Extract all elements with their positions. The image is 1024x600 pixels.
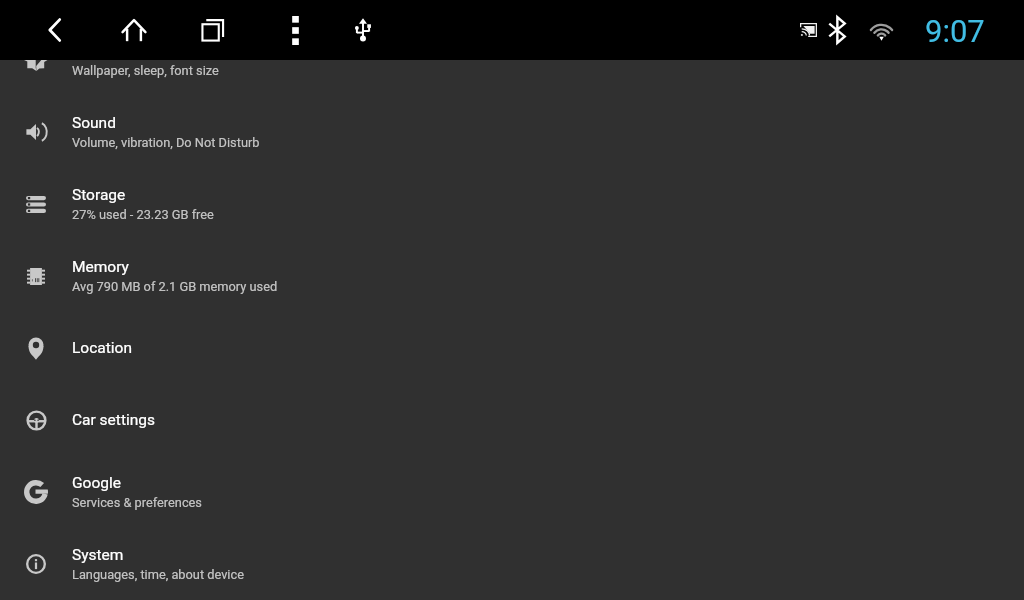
staticText: Memory [72,258,129,276]
staticText: 27% used - 23.23 GB free [72,207,214,222]
staticText: System [72,546,124,564]
button[interactable]: Sound [0,96,1024,168]
button[interactable]: Location [0,312,1024,384]
button[interactable]: Memory [0,240,1024,312]
staticText: Volume, vibration, Do Not Disturb [72,135,260,150]
button[interactable]: Home [110,6,158,54]
staticText: Avg 790 MB of 2.1 GB memory used [72,279,278,294]
button[interactable]: Recent apps [189,6,237,54]
staticText: Wallpaper, sleep, font size [72,63,219,78]
staticText: Languages, time, about device [72,567,244,582]
staticText: Location [72,339,132,357]
staticText: Google [72,474,121,492]
button[interactable]: System [0,528,1024,600]
button[interactable]: USB connection [339,6,387,54]
button[interactable]: Display [0,24,1024,96]
button[interactable]: Google [0,456,1024,528]
staticText: Car settings [72,411,156,429]
button[interactable]: More options [271,6,319,54]
button[interactable]: Car settings [0,384,1024,456]
button[interactable]: Storage [0,168,1024,240]
staticText: Services & preferences [72,495,202,510]
staticText: 9:07 [925,13,985,49]
button[interactable]: Back [31,6,79,54]
staticText: Storage [72,186,126,204]
staticText: Sound [72,114,116,132]
